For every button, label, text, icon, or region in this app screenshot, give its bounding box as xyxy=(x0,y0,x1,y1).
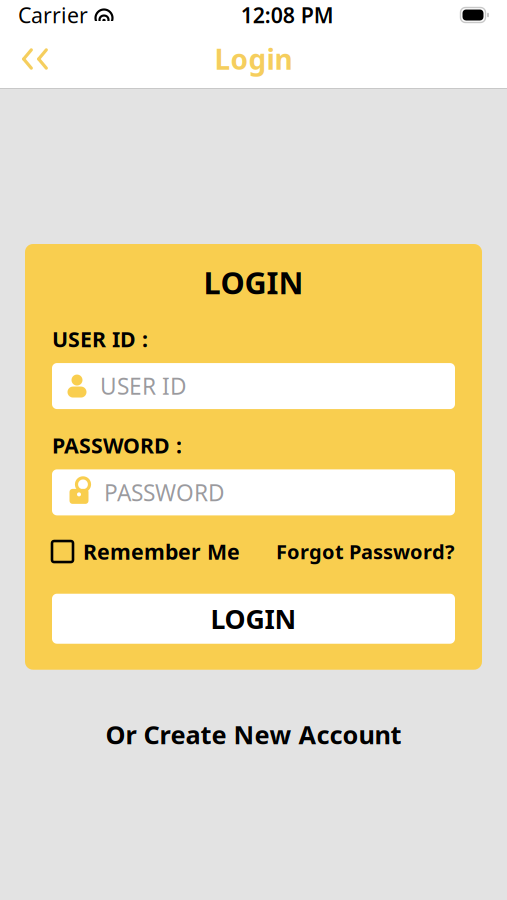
staticText: Carrier xyxy=(18,1,88,29)
button[interactable]: LOGIN xyxy=(52,594,455,644)
button[interactable]: Forgot Password? xyxy=(276,538,455,565)
button[interactable]: Back xyxy=(12,37,58,81)
staticText: USER ID : xyxy=(52,325,148,353)
staticText: Or Create New Account xyxy=(105,718,401,751)
staticText: LOGIN xyxy=(210,601,296,636)
button[interactable]: PASSWORD xyxy=(52,469,455,515)
staticText: Forgot Password? xyxy=(276,538,455,565)
button[interactable]: Remember Me xyxy=(52,537,240,566)
staticText: USER ID xyxy=(100,371,187,401)
staticText: PASSWORD xyxy=(104,477,225,507)
staticText: Remember Me xyxy=(83,537,240,566)
button[interactable]: USER ID xyxy=(52,363,455,409)
staticText: 12:08 PM xyxy=(241,1,334,29)
staticText: LOGIN xyxy=(203,262,303,303)
button[interactable]: Or Create New Account xyxy=(91,710,415,759)
staticText: Login xyxy=(214,40,292,78)
staticText: PASSWORD : xyxy=(52,431,182,459)
